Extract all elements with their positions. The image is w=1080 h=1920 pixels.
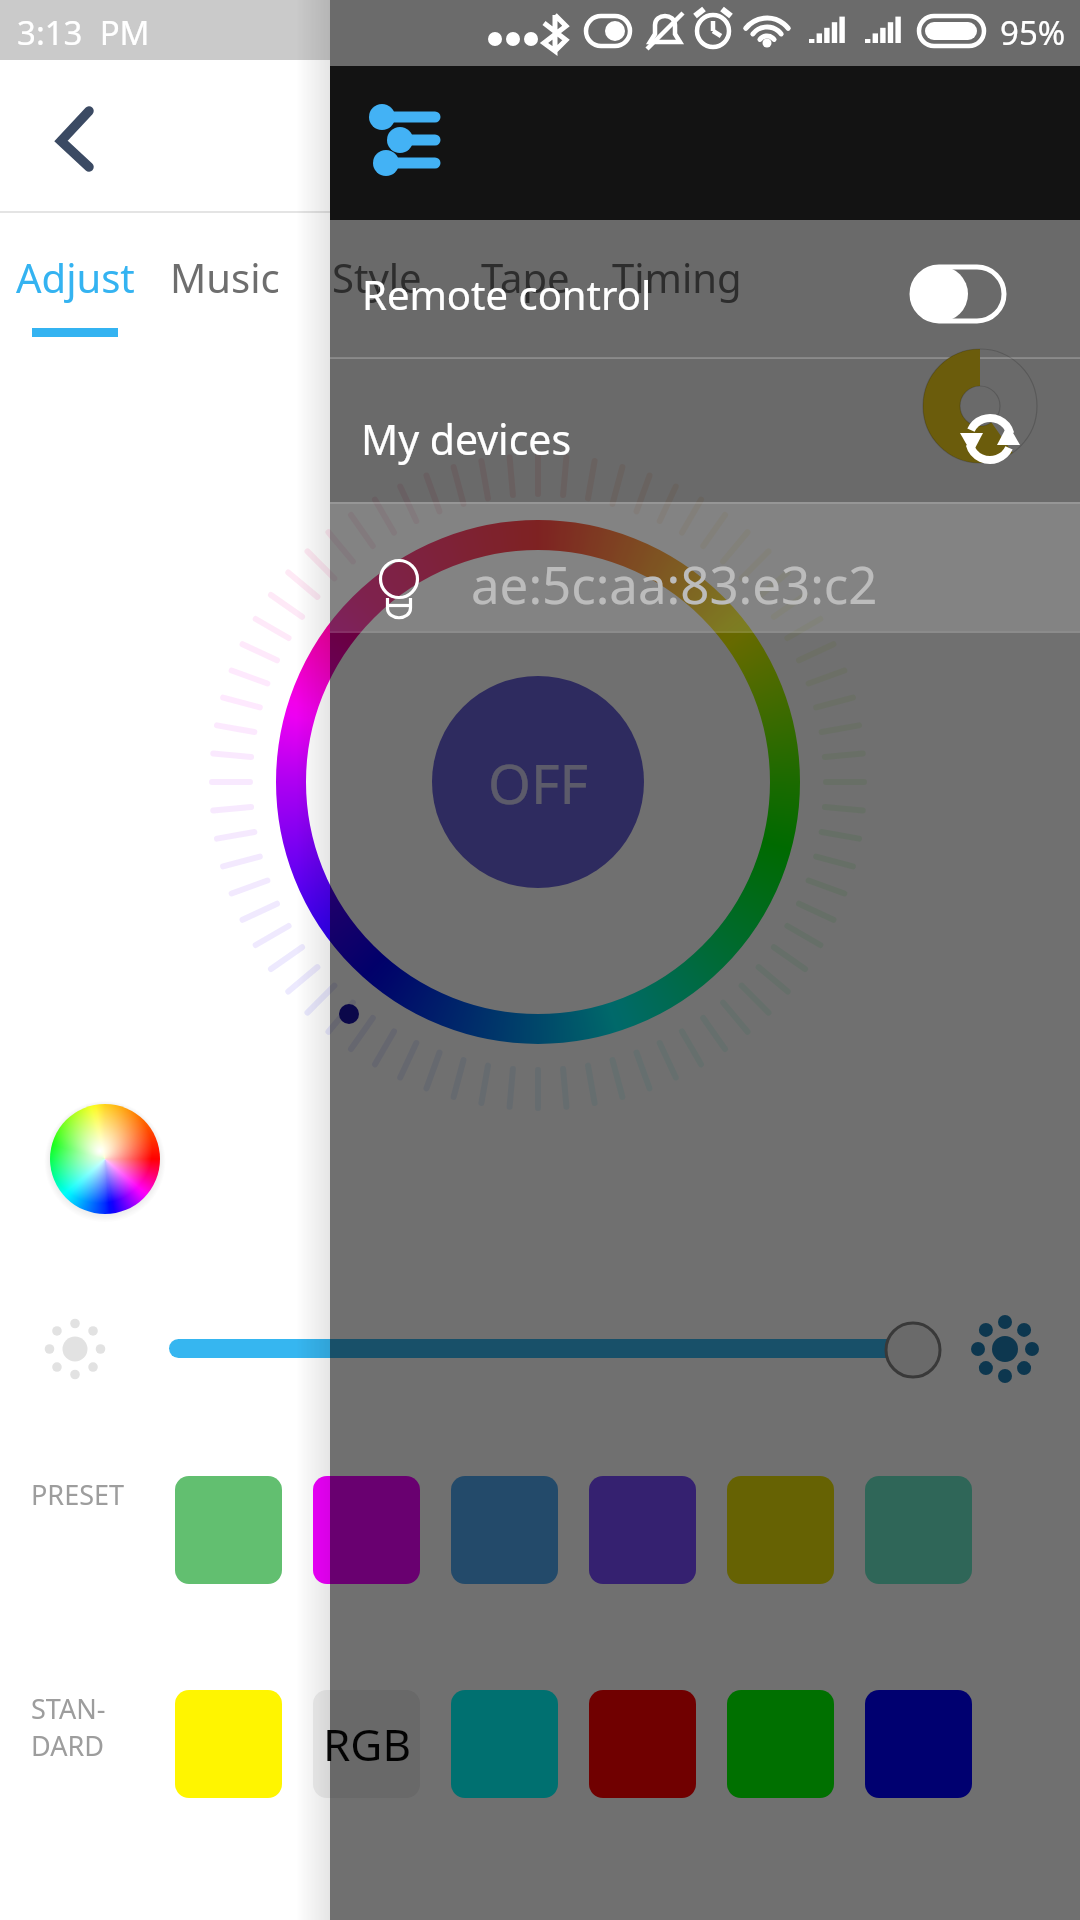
button[interactable] — [330, 504, 1080, 631]
button[interactable] — [727, 1690, 834, 1798]
button[interactable] — [330, 359, 1080, 502]
staticText: Style — [332, 250, 422, 304]
button[interactable] — [589, 1476, 696, 1584]
staticText: Timing — [612, 250, 742, 304]
button[interactable] — [0, 225, 154, 337]
button[interactable] — [313, 1476, 420, 1584]
button[interactable] — [175, 1690, 282, 1798]
staticText: Tape — [481, 250, 570, 304]
button[interactable] — [465, 225, 596, 337]
staticText: Remote control — [362, 267, 652, 321]
staticText: Adjust — [16, 250, 135, 304]
staticText: ae:5c:aa:83:e3:c2 — [471, 549, 878, 618]
button[interactable]: OFF — [432, 676, 644, 888]
button[interactable]: Brightness — [884, 1321, 942, 1379]
staticText: 3:13 PM — [17, 10, 150, 55]
button[interactable] — [865, 1476, 972, 1584]
button[interactable]: Color picker — [50, 1104, 160, 1214]
button[interactable]: Settings — [358, 96, 454, 192]
button[interactable] — [596, 225, 746, 337]
staticText: Music — [170, 250, 280, 304]
button[interactable] — [154, 225, 316, 337]
staticText: RGB — [323, 1714, 411, 1774]
button[interactable]: Remote control toggle — [909, 264, 1007, 324]
button[interactable]: Back — [10, 86, 120, 196]
staticText: PRESET — [31, 1476, 124, 1513]
staticText: My devices — [361, 411, 572, 467]
button[interactable] — [451, 1690, 558, 1798]
staticText: 95% — [1000, 10, 1066, 55]
button[interactable]: RGB — [313, 1690, 420, 1798]
button[interactable] — [316, 225, 465, 337]
staticText: OFF — [488, 745, 589, 820]
button[interactable] — [451, 1476, 558, 1584]
staticText: STAN- DARD — [31, 1690, 106, 1764]
button[interactable] — [865, 1690, 972, 1798]
button[interactable] — [727, 1476, 834, 1584]
button[interactable]: Refresh — [955, 404, 1025, 474]
button[interactable] — [589, 1690, 696, 1798]
button[interactable] — [330, 220, 1080, 358]
button[interactable] — [175, 1476, 282, 1584]
